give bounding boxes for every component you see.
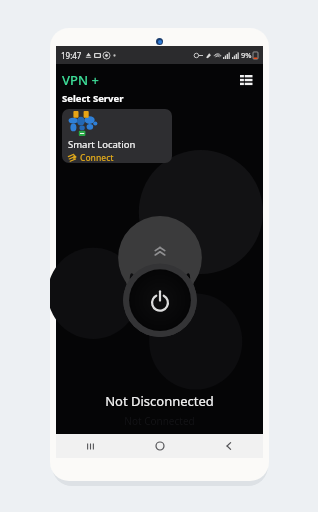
- staticText: 19:47: [61, 50, 82, 61]
- button[interactable]: Power toggle VPN: [124, 265, 196, 337]
- button[interactable]: Recent apps: [56, 434, 125, 458]
- button[interactable]: Smart Location: [62, 109, 172, 163]
- staticText: Smart Location: [68, 138, 136, 151]
- button[interactable]: Home: [125, 434, 194, 458]
- staticText: Connect: [80, 152, 114, 163]
- staticText: VPN +: [62, 71, 99, 89]
- button[interactable]: Back: [194, 434, 263, 458]
- button[interactable]: Server list: [235, 69, 257, 91]
- staticText: Select Server: [62, 92, 124, 105]
- staticText: Not Disconnected: [56, 392, 263, 410]
- staticText: 9%: [241, 50, 252, 60]
